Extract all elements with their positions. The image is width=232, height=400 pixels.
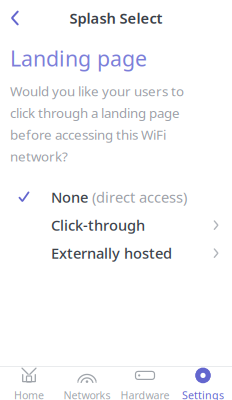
- staticText: Landing page: [10, 44, 147, 72]
- button[interactable]: Click-through: [0, 211, 232, 239]
- staticText: Settings: [182, 388, 224, 400]
- staticText: Networks: [63, 388, 110, 400]
- button[interactable]: Home: [0, 360, 58, 400]
- staticText: Click-through: [51, 215, 145, 235]
- button[interactable]: Hardware: [116, 360, 174, 400]
- button[interactable]: Networks: [58, 360, 116, 400]
- button[interactable]: Settings: [174, 360, 232, 400]
- staticText: Externally hosted: [51, 243, 172, 263]
- staticText: (direct access): [92, 187, 187, 207]
- staticText: None: [51, 187, 88, 207]
- staticText: Home: [14, 388, 44, 400]
- button[interactable]: Externally hosted: [0, 239, 232, 267]
- button[interactable]: Back: [0, 5, 22, 31]
- staticText: Splash Select: [69, 8, 162, 28]
- button[interactable]: None: [0, 183, 232, 211]
- staticText: Would you like your users to click throu…: [10, 82, 184, 165]
- staticText: Hardware: [120, 388, 169, 400]
